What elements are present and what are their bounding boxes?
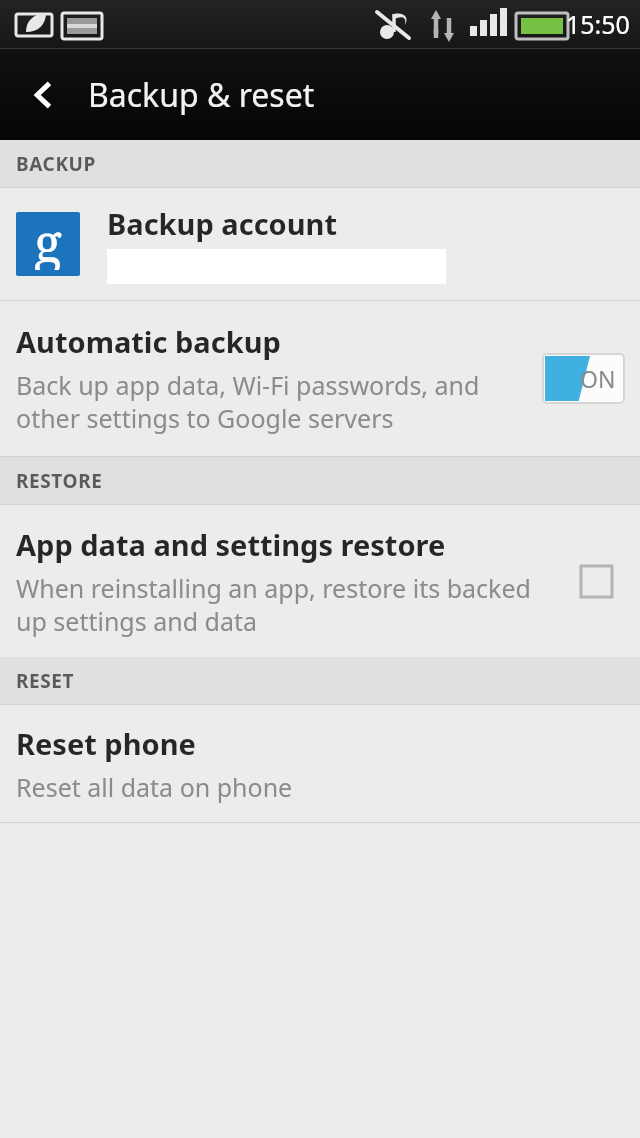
button[interactable]: g — [0, 188, 640, 300]
staticText: Backup & reset — [88, 73, 315, 117]
staticText: Reset phone — [16, 724, 196, 763]
staticText: App data and settings restore — [16, 525, 446, 564]
button[interactable]: App data and settings restore checkbox — [574, 559, 618, 603]
button[interactable]: ON — [543, 354, 624, 403]
staticText: RESET — [16, 668, 75, 694]
button[interactable]: Reset phone — [0, 705, 640, 822]
button[interactable]: Back — [0, 49, 88, 140]
staticText: 15:50 — [566, 7, 630, 41]
button[interactable]: Automatic backup — [0, 301, 640, 456]
staticText: Backup account — [107, 204, 338, 243]
staticText: Reset all data on phone — [16, 770, 293, 804]
staticText: ON — [580, 363, 616, 394]
staticText: RESTORE — [16, 468, 103, 494]
button[interactable]: App data and settings restore — [0, 505, 640, 657]
staticText: Back up app data, Wi-Fi passwords, and o… — [16, 368, 533, 435]
staticText: g — [34, 212, 62, 270]
staticText: BACKUP — [16, 151, 96, 177]
staticText: When reinstalling an app, restore its ba… — [16, 571, 564, 638]
staticText: Automatic backup — [16, 322, 281, 361]
